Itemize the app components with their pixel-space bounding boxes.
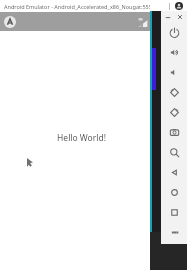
button[interactable]: Back: [161, 162, 187, 182]
button[interactable]: Volume up: [161, 42, 187, 62]
button[interactable]: Volume down: [161, 62, 187, 82]
button[interactable]: Rotate right: [161, 102, 187, 122]
staticText: Hello World!: [57, 132, 106, 144]
button[interactable]: Power: [161, 22, 187, 42]
button[interactable]: Home: [161, 182, 187, 202]
staticText: 11:41: [160, 16, 184, 28]
staticText: Android Emulator - Android_Accelerated_x…: [4, 3, 156, 10]
button[interactable]: Account: [175, 2, 183, 10]
button[interactable]: Overview: [161, 202, 187, 222]
button[interactable]: Minimize: [164, 13, 172, 21]
button[interactable]: Close: [176, 13, 184, 21]
button[interactable]: Screenshot: [161, 122, 187, 142]
button[interactable]: Rotate left: [161, 82, 187, 102]
button[interactable]: More: [161, 222, 187, 242]
button[interactable]: Zoom: [161, 142, 187, 162]
